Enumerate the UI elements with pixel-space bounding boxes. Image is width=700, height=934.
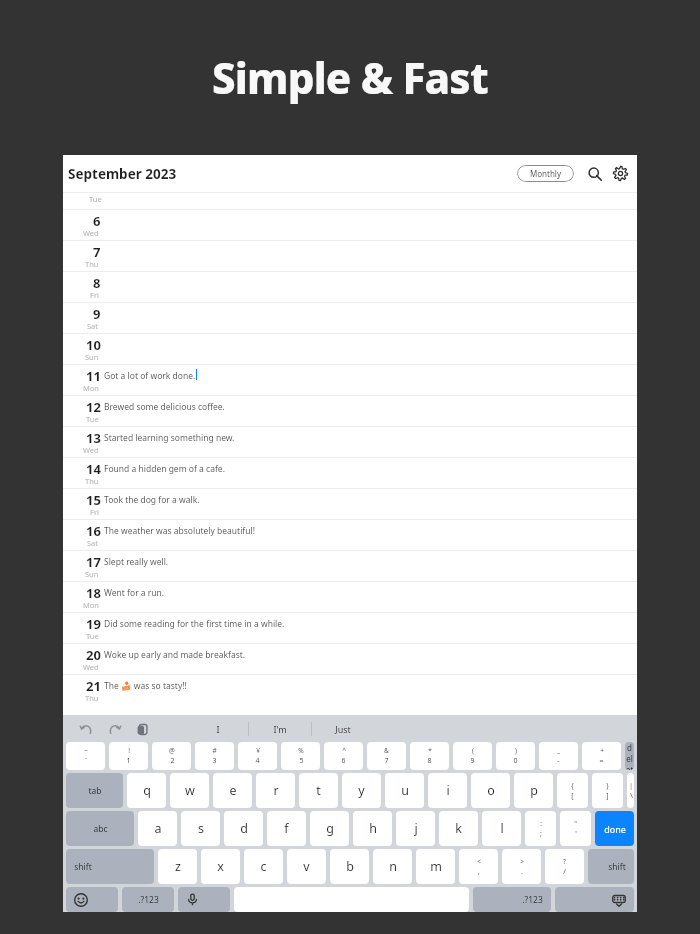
button[interactable]: ^	[324, 742, 363, 770]
button[interactable]: @	[152, 742, 191, 770]
button[interactable]: .?123	[122, 887, 174, 912]
button[interactable]: !	[109, 742, 148, 770]
button[interactable]: ~	[66, 742, 105, 770]
button[interactable]: k	[439, 811, 478, 846]
button[interactable]: j	[396, 811, 435, 846]
button[interactable]: *	[410, 742, 449, 770]
button[interactable]: m	[416, 849, 455, 884]
button[interactable]: n	[373, 849, 412, 884]
button[interactable]: c	[244, 849, 283, 884]
button[interactable]: )	[496, 742, 535, 770]
button[interactable]: 21	[63, 675, 637, 705]
staticText: 20	[86, 646, 101, 664]
staticText: Slept really well.	[104, 556, 169, 568]
button[interactable]: Undo	[77, 720, 95, 738]
button[interactable]: Search	[585, 164, 604, 183]
button[interactable]: Emoji	[66, 887, 118, 912]
staticText: v	[303, 858, 310, 875]
button[interactable]: o	[471, 773, 510, 808]
button[interactable]: 14	[63, 458, 637, 488]
button[interactable]: u	[385, 773, 424, 808]
button[interactable]: z	[158, 849, 197, 884]
staticText: :	[540, 819, 542, 828]
button[interactable]: abc	[66, 811, 134, 846]
button[interactable]: t	[299, 773, 338, 808]
button[interactable]: (	[453, 742, 492, 770]
button[interactable]: d	[224, 811, 263, 846]
button[interactable]: 16	[63, 520, 637, 550]
staticText: Just	[335, 723, 351, 735]
staticText: The weather was absolutely beautiful!	[104, 525, 256, 537]
button[interactable]: 11	[63, 365, 637, 395]
button[interactable]: {	[557, 773, 588, 808]
button[interactable]: Monthly	[517, 165, 574, 182]
button[interactable]: h	[353, 811, 392, 846]
button[interactable]: }	[592, 773, 623, 808]
button[interactable]: %	[281, 742, 320, 770]
button[interactable]: 20	[63, 644, 637, 674]
button[interactable]: b	[330, 849, 369, 884]
button[interactable]: 19	[63, 613, 637, 643]
staticText: 14	[86, 460, 101, 478]
button[interactable]: I	[188, 715, 248, 742]
button[interactable]: v	[287, 849, 326, 884]
button[interactable]: >	[502, 849, 541, 884]
staticText: Brewed some delicious coffee.	[104, 401, 225, 413]
button[interactable]: Hide keyboard	[555, 887, 634, 912]
button[interactable]: p	[514, 773, 553, 808]
button[interactable]: f	[267, 811, 306, 846]
button[interactable]: Settings	[611, 164, 630, 183]
staticText: ^	[342, 746, 346, 755]
button[interactable]: done	[595, 811, 634, 846]
button[interactable]: "	[560, 811, 591, 846]
button[interactable]: i	[428, 773, 467, 808]
button[interactable]: 13	[63, 427, 637, 457]
staticText: \	[630, 791, 633, 801]
button[interactable]: 8	[63, 272, 637, 302]
button[interactable]: y	[342, 773, 381, 808]
button[interactable]: Redo	[105, 720, 123, 738]
button[interactable]: x	[201, 849, 240, 884]
button[interactable]: a	[138, 811, 177, 846]
button[interactable]: .?123	[473, 887, 551, 912]
button[interactable]: 7	[63, 241, 637, 271]
button[interactable]: w	[170, 773, 209, 808]
button[interactable]: 10	[63, 334, 637, 364]
button[interactable]: <	[459, 849, 498, 884]
button[interactable]: +	[582, 742, 621, 770]
button[interactable]: ?	[545, 849, 584, 884]
staticText: 21	[86, 677, 101, 695]
button[interactable]: s	[181, 811, 220, 846]
button[interactable]: l	[482, 811, 521, 846]
staticText: Got a lot of work done.	[104, 370, 196, 382]
button[interactable]: Paste	[133, 720, 151, 738]
button[interactable]: tab	[66, 773, 123, 808]
button[interactable]: 17	[63, 551, 637, 581]
staticText: 18	[86, 584, 101, 602]
staticText: 7	[384, 756, 389, 766]
button[interactable]: Just	[312, 715, 374, 742]
button[interactable]: shift	[66, 849, 154, 884]
button[interactable]: 9	[63, 303, 637, 333]
button[interactable]: 18	[63, 582, 637, 612]
button[interactable]: g	[310, 811, 349, 846]
button[interactable]: 12	[63, 396, 637, 426]
button[interactable]: 15	[63, 489, 637, 519]
button[interactable]: delete	[625, 742, 634, 770]
button[interactable]: |	[627, 773, 634, 808]
button[interactable]: 6	[63, 210, 637, 240]
button[interactable]: q	[127, 773, 166, 808]
button[interactable]: #	[195, 742, 234, 770]
staticText: The 🍰 was so tasty!!	[104, 680, 187, 692]
staticText: 8	[427, 756, 432, 766]
button[interactable]: I'm	[249, 715, 311, 742]
button[interactable]: e	[213, 773, 252, 808]
button[interactable]: r	[256, 773, 295, 808]
button[interactable]: _	[539, 742, 578, 770]
button[interactable]: :	[525, 811, 556, 846]
button[interactable]: ¥	[238, 742, 277, 770]
button[interactable]: &	[367, 742, 406, 770]
button[interactable]: Dictation	[178, 887, 230, 912]
button[interactable]: shift	[588, 849, 634, 884]
